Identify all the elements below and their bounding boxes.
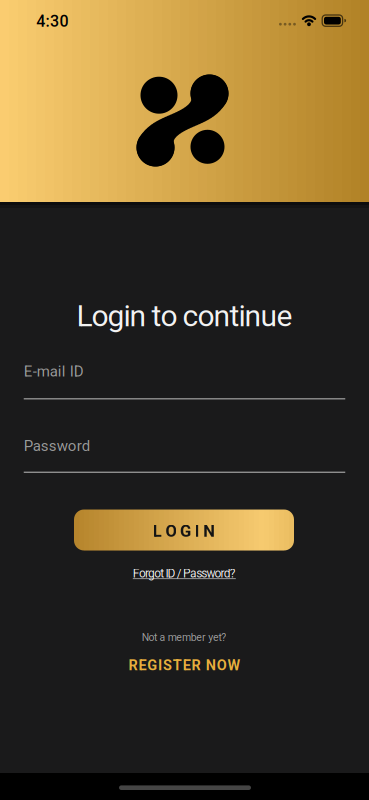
staticText: S [163, 657, 172, 674]
staticText: O [217, 657, 227, 674]
staticText: E [138, 657, 146, 674]
button[interactable]: R [128, 657, 240, 674]
staticText: Password [24, 437, 90, 455]
staticText: R [128, 657, 137, 674]
staticText: N [206, 657, 216, 674]
staticText: 4:30 [36, 12, 68, 31]
staticText: E [183, 657, 191, 674]
staticText: N [203, 521, 215, 541]
staticText: Forgot ID / Password? [133, 566, 236, 581]
staticText: O [165, 521, 176, 541]
button[interactable]: L [74, 509, 294, 550]
staticText: G [180, 521, 191, 541]
staticText: W [227, 657, 240, 674]
staticText: G [147, 657, 157, 674]
staticText: I [195, 521, 200, 541]
staticText: I [158, 657, 162, 674]
staticText: L [153, 521, 162, 541]
staticText: R [191, 657, 200, 674]
staticText: Login to continue [76, 298, 292, 334]
staticText: T [173, 657, 182, 674]
button[interactable]: E-mail ID [24, 362, 345, 399]
button[interactable]: Password [24, 437, 345, 473]
button[interactable]: Forgot ID / Password? [133, 566, 236, 581]
staticText: Not a member yet? [142, 631, 226, 644]
staticText: E-mail ID [24, 362, 84, 380]
